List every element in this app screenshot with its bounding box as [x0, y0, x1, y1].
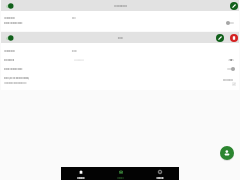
button[interactable]: Username: [1, 48, 239, 53]
staticText: Home: [77, 176, 85, 179]
staticText: /storage/emulated/0/: [4, 81, 27, 84]
staticText: john: [72, 50, 77, 53]
button[interactable]: Toggle: [227, 66, 235, 71]
button[interactable]: Show hidden files: [1, 66, 239, 71]
staticText: Show hidden files: [4, 21, 23, 24]
staticText: john: [118, 37, 123, 40]
staticText: Path (SFTP-Servername): [4, 76, 30, 79]
staticText: Users: [117, 175, 124, 178]
button[interactable]: Password: [1, 57, 239, 62]
staticText: /storage/emulated/0/: [4, 82, 27, 85]
button[interactable]: About: [140, 167, 179, 180]
staticText: Password: [4, 59, 15, 62]
button[interactable]: john: [1, 32, 239, 43]
staticText: Path (SFTP-Servername): [4, 77, 30, 80]
staticText: ssh: [72, 17, 76, 20]
button[interactable]: Edit: [216, 34, 224, 42]
staticText: Writable: [223, 78, 233, 81]
staticText: john: [72, 49, 77, 52]
staticText: ssh: [72, 16, 76, 19]
staticText: Username: [4, 49, 15, 52]
staticText: Username: [4, 17, 15, 20]
button[interactable]: Home: [61, 167, 101, 180]
button[interactable]: Anonymous: [1, 0, 239, 11]
button[interactable]: Path (SFTP-Servername): [1, 75, 239, 88]
staticText: Show hidden files: [4, 22, 23, 25]
staticText: About: [156, 176, 164, 179]
staticText: Username: [4, 50, 15, 53]
staticText: Show hidden files: [4, 68, 23, 71]
staticText: Show hidden files: [4, 67, 23, 70]
button[interactable]: Show hidden files: [1, 20, 239, 25]
button[interactable]: Users: [101, 167, 140, 180]
staticText: About: [156, 175, 164, 178]
button[interactable]: Username: [1, 15, 239, 20]
button[interactable]: Edit: [230, 2, 238, 10]
staticText: john: [118, 36, 123, 39]
button[interactable]: Writable: [231, 81, 236, 86]
staticText: Username: [4, 16, 15, 19]
button[interactable]: Toggle: [226, 20, 234, 25]
staticText: Anonymous: [114, 5, 127, 8]
button[interactable]: Add user: [220, 146, 234, 160]
button[interactable]: Show password: [228, 57, 234, 62]
staticText: Home: [77, 175, 85, 178]
staticText: Writable: [223, 77, 233, 80]
staticText: Anonymous: [114, 4, 127, 7]
staticText: Password: [4, 58, 15, 61]
button[interactable]: Delete: [230, 34, 238, 42]
staticText: Users: [117, 176, 124, 179]
